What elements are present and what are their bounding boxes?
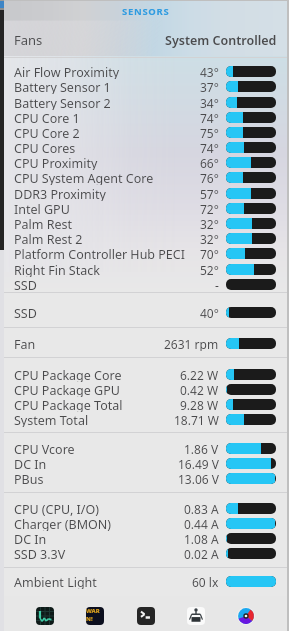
button[interactable]: Air Flow Proximity <box>4 64 287 79</box>
button[interactable]: Fan <box>4 336 287 351</box>
staticText: DC In <box>14 456 47 471</box>
staticText: DDR3 Proximity <box>14 186 106 201</box>
button[interactable]: Battery Sensor 1 <box>4 79 287 94</box>
staticText: CPU Package Core <box>14 367 122 382</box>
staticText: CPU Package Total <box>14 397 123 412</box>
button[interactable]: System Total <box>4 412 287 427</box>
button[interactable]: Platform Controller Hub PECI <box>4 246 287 261</box>
staticText: 34° <box>200 95 219 110</box>
staticText: Battery Sensor 2 <box>14 95 111 110</box>
button[interactable]: Right Fin Stack <box>4 262 287 277</box>
staticText: 43° <box>200 64 219 79</box>
staticText: 32° <box>200 216 219 231</box>
button[interactable]: SSD <box>4 305 287 320</box>
button[interactable]: Battery Sensor 2 <box>4 95 287 110</box>
staticText: Palm Rest <box>14 216 73 231</box>
staticText: 40° <box>200 305 219 320</box>
staticText: 74° <box>200 140 219 155</box>
staticText: SENSORS <box>122 5 170 18</box>
staticText: Platform Controller Hub PECI <box>14 246 185 261</box>
staticText: CPU Cores <box>14 140 76 155</box>
staticText: 0.83 A <box>184 501 219 516</box>
staticText: Palm Rest 2 <box>14 231 83 246</box>
staticText: Battery Sensor 1 <box>14 79 111 94</box>
staticText: DC In <box>14 531 47 546</box>
button[interactable]: CPU Package Core <box>4 367 287 382</box>
staticText: 13.06 V <box>178 471 219 486</box>
staticText: CPU System Agent Core <box>14 170 154 185</box>
button[interactable]: SSD 3.3V <box>4 546 287 561</box>
staticText: 1.86 V <box>184 441 219 456</box>
button[interactable]: CPU Proximity <box>4 155 287 170</box>
staticText: 76° <box>200 170 219 185</box>
staticText: 72° <box>200 201 219 216</box>
button[interactable]: Intel GPU <box>4 201 287 216</box>
button[interactable]: CPU System Agent Core <box>4 170 287 185</box>
staticText: Fans <box>14 31 43 49</box>
staticText: 32° <box>200 231 219 246</box>
staticText: Right Fin Stack <box>14 262 100 277</box>
staticText: System Controlled <box>165 32 277 49</box>
button[interactable]: CPU (CPU, I/O) <box>4 501 287 516</box>
staticText: PBus <box>14 471 44 486</box>
button[interactable]: DC In <box>4 456 287 471</box>
button[interactable]: Activity Monitor <box>36 607 54 625</box>
staticText: - <box>215 277 219 292</box>
staticText: 0.42 W <box>180 382 219 397</box>
button[interactable]: DC In <box>4 531 287 546</box>
staticText: Fan <box>14 336 36 351</box>
button[interactable]: SENSORS <box>4 1 287 22</box>
button[interactable]: PBus <box>4 471 287 486</box>
button[interactable]: CPU Cores <box>4 140 287 155</box>
staticText: 0.44 A <box>184 516 219 531</box>
staticText: 52° <box>200 262 219 277</box>
staticText: SSD 3.3V <box>14 546 66 561</box>
button[interactable]: CPU Core 2 <box>4 125 287 140</box>
staticText: 60 lx <box>192 574 219 589</box>
staticText: 57° <box>200 186 219 201</box>
staticText: Intel GPU <box>14 201 70 216</box>
button[interactable]: Warning clock <box>86 607 104 625</box>
staticText: 74° <box>200 110 219 125</box>
button[interactable]: SSD <box>4 277 287 292</box>
staticText: WARN! <box>86 607 104 623</box>
staticText: 70° <box>200 246 219 261</box>
button[interactable]: Charger (BMON) <box>4 516 287 531</box>
button[interactable]: Ambient Light <box>4 574 287 589</box>
staticText: Ambient Light <box>14 574 97 589</box>
staticText: SSD <box>14 277 37 292</box>
staticText: System Total <box>14 412 89 427</box>
staticText: CPU Proximity <box>14 155 98 170</box>
staticText: 9.28 W <box>180 397 219 412</box>
staticText: 16.49 V <box>178 456 219 471</box>
staticText: 6.22 W <box>180 367 219 382</box>
staticText: Air Flow Proximity <box>14 64 120 79</box>
button[interactable]: CPU Vcore <box>4 441 287 456</box>
button[interactable]: Palm Rest 2 <box>4 231 287 246</box>
button[interactable]: DDR3 Proximity <box>4 186 287 201</box>
staticText: 75° <box>200 125 219 140</box>
button[interactable]: CPU Package GPU <box>4 382 287 397</box>
staticText: Charger (BMON) <box>14 516 112 531</box>
button[interactable]: Robot app <box>187 607 205 625</box>
staticText: CPU Core 1 <box>14 110 80 125</box>
staticText: W 7:34 <box>86 623 104 625</box>
button[interactable]: CPU Package Total <box>4 397 287 412</box>
staticText: CPU (CPU, I/O) <box>14 501 99 516</box>
staticText: SSD <box>14 305 37 320</box>
staticText: 66° <box>200 155 219 170</box>
staticText: 0.02 A <box>184 546 219 561</box>
button[interactable]: CPU Core 1 <box>4 110 287 125</box>
staticText: 1.08 A <box>184 531 219 546</box>
button[interactable]: Palm Rest <box>4 216 287 231</box>
staticText: 18.71 W <box>174 412 219 427</box>
staticText: CPU Vcore <box>14 441 75 456</box>
button[interactable]: Terminal <box>137 607 155 625</box>
staticText: 2631 rpm <box>164 336 219 351</box>
staticText: CPU Core 2 <box>14 125 80 140</box>
staticText: CPU Package GPU <box>14 382 120 397</box>
staticText: 37° <box>200 79 219 94</box>
button[interactable]: Browser <box>237 607 255 625</box>
